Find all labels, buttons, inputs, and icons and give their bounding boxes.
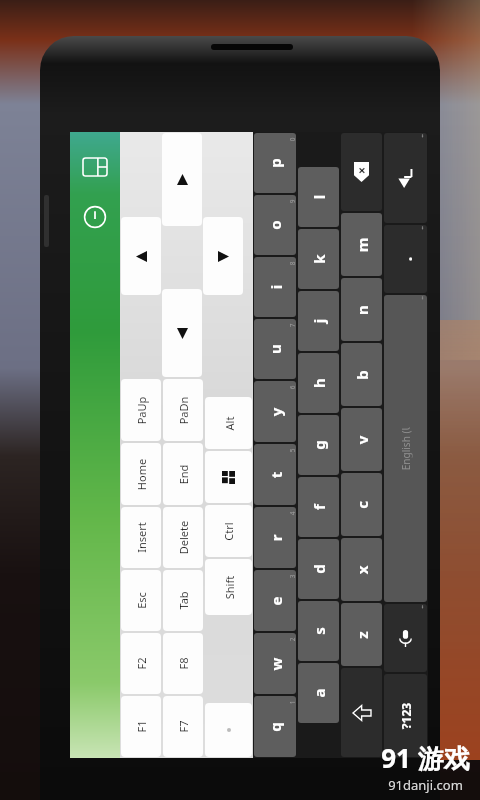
button[interactable]: v xyxy=(341,408,382,471)
button[interactable]: s xyxy=(298,601,339,661)
button[interactable]: i xyxy=(254,257,296,317)
button[interactable]: Power xyxy=(78,200,112,234)
button[interactable]: Backspace xyxy=(341,133,382,211)
staticText: c xyxy=(352,501,372,509)
button[interactable]: ?123 xyxy=(384,674,427,757)
staticText: Shift xyxy=(221,575,236,599)
button[interactable]: F1 xyxy=(121,696,161,757)
staticText: Ctrl xyxy=(221,522,236,541)
button[interactable]: n xyxy=(341,278,382,341)
staticText: 6 xyxy=(287,385,296,389)
staticText: m xyxy=(351,237,371,252)
staticText: k xyxy=(309,254,329,264)
button[interactable]: Insert xyxy=(121,507,161,568)
staticText: . xyxy=(394,256,416,261)
button[interactable]: b xyxy=(341,343,382,406)
button[interactable]: . xyxy=(384,225,427,293)
staticText: Esc xyxy=(134,592,149,609)
button[interactable]: PaDn xyxy=(163,379,203,441)
staticText: 5 xyxy=(287,448,296,452)
staticText: i xyxy=(265,284,285,289)
button[interactable]: h xyxy=(298,353,339,413)
button[interactable]: l xyxy=(298,167,339,227)
button[interactable]: End xyxy=(163,443,203,505)
button[interactable]: Delete xyxy=(163,507,203,568)
button[interactable]: j xyxy=(298,291,339,351)
button[interactable]: Left xyxy=(121,217,161,295)
staticText: 0 xyxy=(287,137,296,141)
button[interactable]: d xyxy=(298,539,339,599)
staticText: r xyxy=(265,534,285,541)
button[interactable]: p xyxy=(254,133,296,193)
button[interactable]: q xyxy=(254,696,296,757)
staticText: Home xyxy=(133,458,148,490)
staticText: l xyxy=(308,194,328,199)
button[interactable]: Right xyxy=(203,217,243,295)
staticText: f xyxy=(309,504,329,510)
button[interactable]: Alt xyxy=(205,397,252,449)
button[interactable]: o xyxy=(254,195,296,255)
staticText: b xyxy=(352,370,372,380)
staticText: q xyxy=(265,722,285,732)
staticText: e xyxy=(265,596,285,605)
staticText: a xyxy=(308,688,328,697)
staticText: Delete xyxy=(175,520,190,554)
button[interactable]: Down xyxy=(162,289,202,377)
button[interactable]: t xyxy=(254,444,296,505)
staticText: p xyxy=(265,158,285,168)
button[interactable]: g xyxy=(298,415,339,475)
button[interactable]: Tab xyxy=(163,570,203,631)
staticText: j xyxy=(308,318,328,323)
button[interactable]: F8 xyxy=(163,633,203,694)
staticText: 3 xyxy=(287,574,296,578)
button[interactable]: z xyxy=(341,603,382,666)
button[interactable]: x xyxy=(341,538,382,601)
button[interactable]: Enter xyxy=(384,133,427,223)
staticText: s xyxy=(309,627,329,635)
staticText: y xyxy=(265,407,285,416)
button[interactable]: Layout xyxy=(78,150,112,184)
button[interactable]: k xyxy=(298,229,339,289)
button[interactable]: Shift xyxy=(205,559,252,615)
staticText: PaUp xyxy=(133,396,148,424)
staticText: F8 xyxy=(176,657,191,670)
staticText: Tab xyxy=(176,591,191,610)
staticText: v xyxy=(351,435,371,444)
button[interactable]: u xyxy=(254,319,296,379)
button[interactable]: r xyxy=(254,507,296,568)
button[interactable]: Esc xyxy=(121,570,161,631)
staticText: h xyxy=(309,378,329,388)
staticText: w xyxy=(265,657,285,670)
staticText: English (US) xyxy=(398,427,412,470)
staticText: F1 xyxy=(134,720,149,733)
button[interactable]: f xyxy=(298,477,339,537)
staticText: 7 xyxy=(287,323,296,327)
button[interactable]: PaUp xyxy=(121,379,161,441)
button[interactable]: F2 xyxy=(121,633,161,694)
button[interactable]: Windows xyxy=(205,451,252,503)
button[interactable]: Shift xyxy=(341,668,382,757)
staticText: Insert xyxy=(134,522,149,553)
staticText: PaDn xyxy=(175,396,190,424)
button[interactable]: Voice input xyxy=(384,604,427,672)
staticText: x xyxy=(351,565,371,574)
button[interactable]: Home xyxy=(121,443,161,505)
button[interactable]: y xyxy=(254,381,296,442)
staticText: Alt xyxy=(221,416,236,430)
button[interactable]: e xyxy=(254,570,296,631)
button[interactable]: Ctrl xyxy=(205,505,252,557)
staticText: 91danji.com xyxy=(388,776,463,794)
button[interactable]: a xyxy=(298,663,339,723)
button[interactable]: m xyxy=(341,213,382,276)
button[interactable]: Space xyxy=(384,295,427,602)
button[interactable]: Up xyxy=(162,133,202,226)
staticText: 2 xyxy=(287,637,296,641)
button[interactable]: More xyxy=(205,703,252,757)
staticText: × xyxy=(358,161,366,179)
staticText: End xyxy=(175,464,190,484)
staticText: 9 xyxy=(287,199,296,203)
button[interactable]: c xyxy=(341,473,382,536)
button[interactable]: w xyxy=(254,633,296,694)
staticText: 1 xyxy=(287,700,296,704)
button[interactable]: F7 xyxy=(163,696,203,757)
